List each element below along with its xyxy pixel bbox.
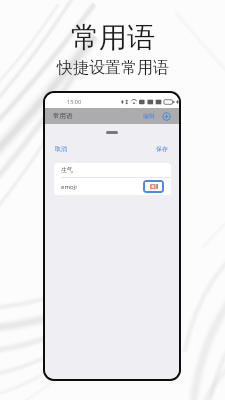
button[interactable]: Add phrase — [162, 112, 171, 121]
staticText: 编辑 — [143, 112, 155, 120]
button[interactable]: 生气 — [54, 163, 171, 177]
button[interactable]: 编辑 — [142, 111, 156, 121]
button[interactable]: 保存 — [155, 144, 169, 154]
staticText: 取消 — [55, 145, 67, 153]
button[interactable]: 取消 — [54, 144, 68, 154]
staticText: 保存 — [156, 145, 168, 153]
button[interactable]: emoji — [54, 178, 171, 195]
staticText: 生气 — [61, 166, 73, 174]
staticText: 常用语 — [53, 112, 73, 120]
staticText: 15:00 — [67, 98, 82, 105]
staticText: 常用语 — [71, 20, 155, 55]
button[interactable]: Insert emoji — [143, 180, 164, 193]
staticText: 快捷设置常用语 — [57, 58, 169, 78]
staticText: emoji — [61, 183, 77, 191]
